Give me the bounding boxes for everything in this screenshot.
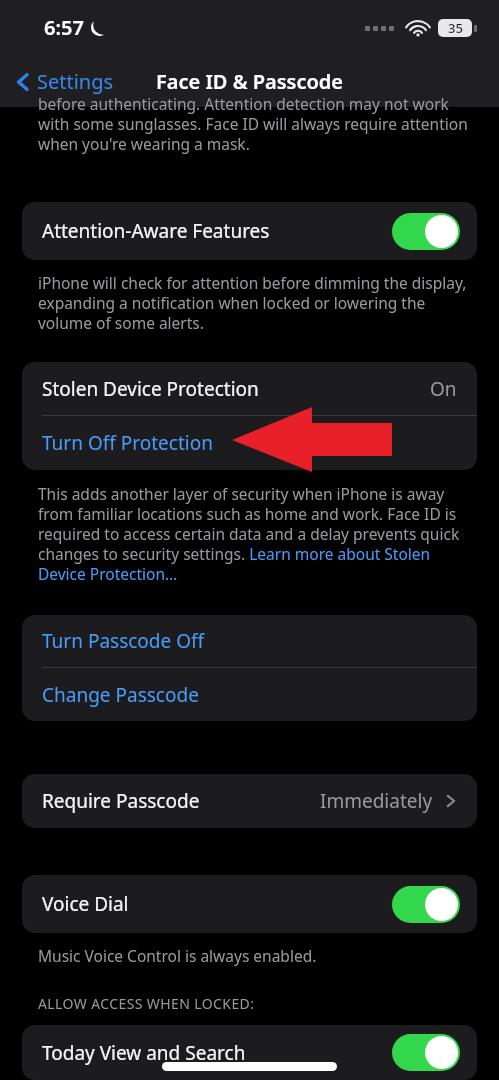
staticText: Turn Passcode Off (42, 628, 205, 654)
staticText: Attention-Aware Features (42, 218, 270, 244)
staticText: Change Passcode (42, 682, 199, 708)
staticText: Turn Off Protection (42, 430, 213, 456)
staticText: Settings (37, 68, 114, 95)
button[interactable]: Turn Passcode Off (22, 615, 477, 667)
button[interactable]: Voice Dial (22, 875, 477, 933)
staticText: Require Passcode (42, 788, 200, 814)
button[interactable]: Change Passcode (22, 668, 477, 721)
button[interactable]: Today View and Search (22, 1025, 477, 1080)
staticText: 6:57 (44, 14, 84, 41)
staticText: Today View and Search (42, 1040, 246, 1066)
staticText: ALLOW ACCESS WHEN LOCKED: (38, 994, 255, 1013)
button[interactable]: Toggle on (392, 886, 460, 923)
staticText: 35 (448, 19, 463, 37)
button[interactable]: Attention-Aware Features (22, 202, 477, 260)
staticText: Music Voice Control is always enabled. (38, 945, 469, 966)
button[interactable]: Toggle on (392, 1034, 460, 1071)
staticText: before authenticating. Attention detecti… (38, 93, 469, 155)
button[interactable]: Toggle on (392, 213, 460, 250)
staticText: Face ID & Passcode (156, 68, 344, 95)
staticText: Stolen Device Protection (42, 376, 259, 402)
button[interactable]: Require Passcode (22, 774, 477, 828)
staticText: Immediately (320, 788, 433, 814)
staticText: This adds another layer of security when… (38, 483, 469, 585)
staticText: Voice Dial (42, 891, 129, 917)
button[interactable]: Stolen Device Protection (22, 362, 477, 415)
button[interactable]: Settings (12, 68, 114, 95)
button[interactable]: Turn Off Protection (22, 416, 477, 470)
staticText: On (430, 376, 457, 402)
staticText: iPhone will check for attention before d… (38, 272, 469, 334)
